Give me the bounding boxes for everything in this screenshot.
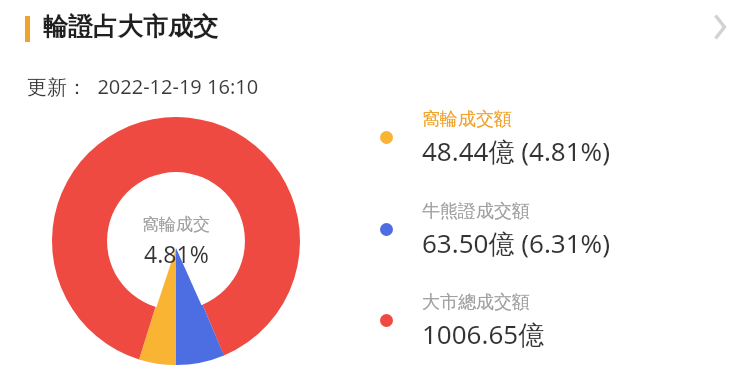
button[interactable]: Turnover breakdown donut chart bbox=[52, 117, 300, 365]
staticText: 窩輪成交額 bbox=[422, 108, 512, 131]
staticText: 4.81% bbox=[144, 238, 209, 269]
staticText: 1006.65億 bbox=[422, 316, 545, 352]
staticText: 63.50億 (6.31%) bbox=[422, 225, 611, 261]
button[interactable]: 輪證占大市成交 bbox=[14, 6, 334, 52]
button[interactable]: 大市總成交額 bbox=[370, 287, 718, 361]
staticText: 輪證占大市成交 bbox=[43, 11, 218, 42]
staticText: 牛熊證成交額 bbox=[422, 200, 530, 223]
staticText: 更新： 2022-12-19 16:10 bbox=[27, 73, 259, 100]
staticText: 窩輪成交 bbox=[142, 214, 210, 235]
staticText: 48.44億 (4.81%) bbox=[422, 133, 611, 169]
button[interactable]: 牛熊證成交額 bbox=[370, 196, 718, 270]
button[interactable]: 窩輪成交額 bbox=[370, 104, 718, 178]
staticText: 大市總成交額 bbox=[422, 291, 530, 314]
button[interactable]: View details bbox=[698, 5, 742, 49]
